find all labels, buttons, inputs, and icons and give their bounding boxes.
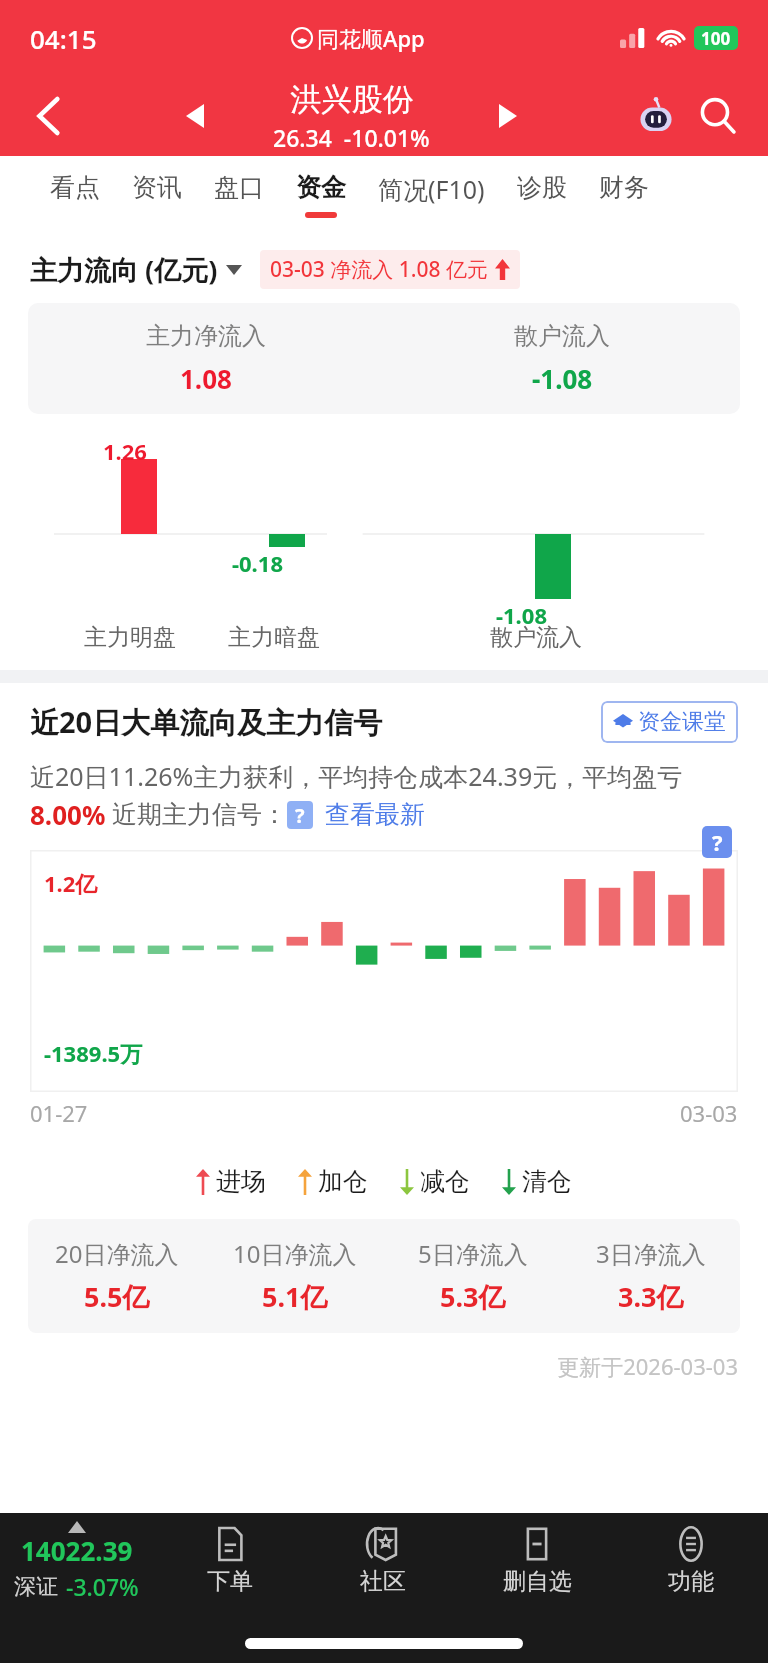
button[interactable]: 进场 [196,1166,266,1197]
button[interactable]: 诊股 [501,156,583,212]
staticText: ? [712,827,723,857]
staticText: 盘口 [214,172,264,203]
staticText: 财务 [599,172,649,203]
staticText: 近期主力信号： [112,799,287,830]
button[interactable]: 资讯 [116,156,198,212]
button[interactable]: 加仓 [298,1166,368,1197]
button[interactable]: 14022.39 [0,1513,153,1602]
staticText: 清仓 [522,1166,572,1197]
staticText: 主力净流入 [146,321,266,351]
staticText: 26.34 -10.01% [273,122,430,153]
button[interactable]: 清仓 [502,1166,572,1197]
staticText: 5.1亿 [262,1278,328,1315]
staticText: 5.5亿 [84,1278,150,1315]
button[interactable]: Search [694,92,742,140]
button[interactable]: 资金课堂 [613,708,726,736]
button[interactable]: Next stock [486,94,530,138]
staticText: 资金 [296,172,346,203]
button[interactable]: AI assistant [632,92,680,140]
staticText: -1.08 [532,361,593,396]
staticText: 诊股 [517,172,567,203]
staticText: 1.08 [180,361,232,396]
staticText: 更新于2026-03-03 [0,1351,738,1381]
button[interactable]: Signal help [702,826,732,858]
button[interactable]: 删自选 [460,1513,614,1596]
button[interactable]: 03-03 净流入 1.08 亿元 [270,255,510,284]
button[interactable]: 资金 [280,156,362,218]
staticText: 主力流向 (亿元) [30,251,218,288]
staticText: 洪兴股份 [290,80,414,119]
button[interactable]: 看点 [34,156,116,212]
staticText: 03-03 净流入 1.08 亿元 [270,255,488,284]
staticText: 散户流入 [490,623,582,652]
staticText: 04:15 [30,21,97,56]
staticText: 简况(F10) [378,172,485,206]
button[interactable]: 下单 [153,1513,306,1596]
staticText: -1389.5万 [44,1038,143,1068]
staticText: 社区 [360,1567,406,1596]
staticText: 看点 [50,172,100,203]
staticText: 进场 [216,1166,266,1197]
staticText: 减仓 [420,1166,470,1197]
button[interactable]: 查看最新 [325,799,425,830]
staticText: 深证 [14,1573,58,1601]
staticText: 近20日11.26%主力获利，平均持仓成本24.39元，平均盈亏 [30,759,683,793]
staticText: 10日净流入 [233,1237,357,1270]
button[interactable]: Previous stock [173,94,217,138]
button[interactable]: 盘口 [198,156,280,212]
staticText: 加仓 [318,1166,368,1197]
staticText: 1.26 [103,436,147,466]
button[interactable]: 简况(F10) [362,156,501,215]
button[interactable]: 功能 [614,1513,768,1596]
button[interactable]: 社区 [306,1513,460,1596]
button[interactable]: Back [26,93,72,139]
staticText: 下单 [207,1567,253,1596]
staticText: ? [295,802,305,829]
button[interactable]: Help [287,801,313,829]
staticText: 1.2亿 [44,868,98,898]
staticText: 近20日大单流向及主力信号 [30,702,383,742]
staticText: 8.00% [30,797,106,832]
staticText: 资讯 [132,172,182,203]
staticText: 资金课堂 [638,708,726,736]
staticText: 14022.39 [21,1533,133,1568]
button[interactable]: 减仓 [400,1166,470,1197]
staticText: 3日净流入 [596,1237,706,1270]
staticText: 功能 [668,1567,714,1596]
staticText: 3.3亿 [618,1278,684,1315]
staticText: 5日净流入 [418,1237,528,1270]
staticText: -3.07% [66,1571,139,1602]
button[interactable]: 财务 [583,156,665,212]
staticText: 同花顺App [317,23,425,53]
staticText: 删自选 [503,1567,572,1596]
staticText: 01-27 [30,1098,88,1128]
staticText: 主力暗盘 [228,623,320,652]
staticText: 03-03 [680,1098,738,1128]
staticText: -1.08 [496,600,547,630]
staticText: 5.3亿 [440,1278,506,1315]
staticText: 100 [701,27,731,50]
button[interactable]: 主力流向 (亿元) [30,251,242,288]
staticText: 散户流入 [514,321,610,351]
staticText: 主力明盘 [84,623,176,652]
staticText: 20日净流入 [55,1237,179,1270]
staticText: -0.18 [232,548,283,578]
